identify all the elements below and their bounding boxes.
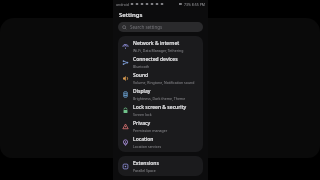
- button[interactable]: Location: [118, 134, 203, 150]
- staticText: 73% 8:55 PM: [184, 2, 205, 7]
- staticText: Volume, Ringtone, Notification sound: [133, 80, 195, 85]
- button[interactable]: Extensions: [118, 158, 203, 174]
- staticText: Brightness, Dark theme, Theme: [48, 118, 197, 126]
- staticText: Brightness, Dark theme, Theme: [133, 96, 186, 101]
- staticText: Network & internet: [133, 40, 180, 47]
- staticText: Bluetooth: [133, 64, 150, 69]
- staticText: Location: [133, 136, 154, 143]
- staticText: Location services: [133, 144, 162, 149]
- staticText: Connected devices: [133, 56, 178, 63]
- staticText: Settings: [119, 11, 143, 19]
- staticText: Lock screen & security: [133, 104, 187, 111]
- staticText: Wi-Fi, Data Manager, Tethering: [133, 48, 184, 53]
- button[interactable]: Lock screen & security: [118, 102, 203, 118]
- staticText: Display: [133, 88, 151, 95]
- button[interactable]: Privacy: [118, 118, 203, 134]
- staticText: android: [116, 2, 129, 7]
- other: Search: [122, 25, 127, 30]
- button[interactable]: Sound: [118, 70, 203, 86]
- button[interactable]: Display: [118, 86, 203, 102]
- button[interactable]: Connected devices: [118, 54, 203, 70]
- staticText: Extensions: [133, 160, 159, 167]
- staticText: Sound: [133, 72, 149, 79]
- button[interactable]: Search: [118, 22, 203, 32]
- staticText: Permission manager: [133, 128, 168, 133]
- staticText: Search settings: [130, 24, 163, 30]
- staticText: Privacy: [133, 120, 151, 127]
- button[interactable]: Network & internet: [118, 38, 203, 54]
- staticText: Parallel Space: [133, 168, 156, 173]
- staticText: Screen lock: [133, 112, 152, 117]
- staticText: Volume, Ringtone, Notification sound: [48, 64, 224, 72]
